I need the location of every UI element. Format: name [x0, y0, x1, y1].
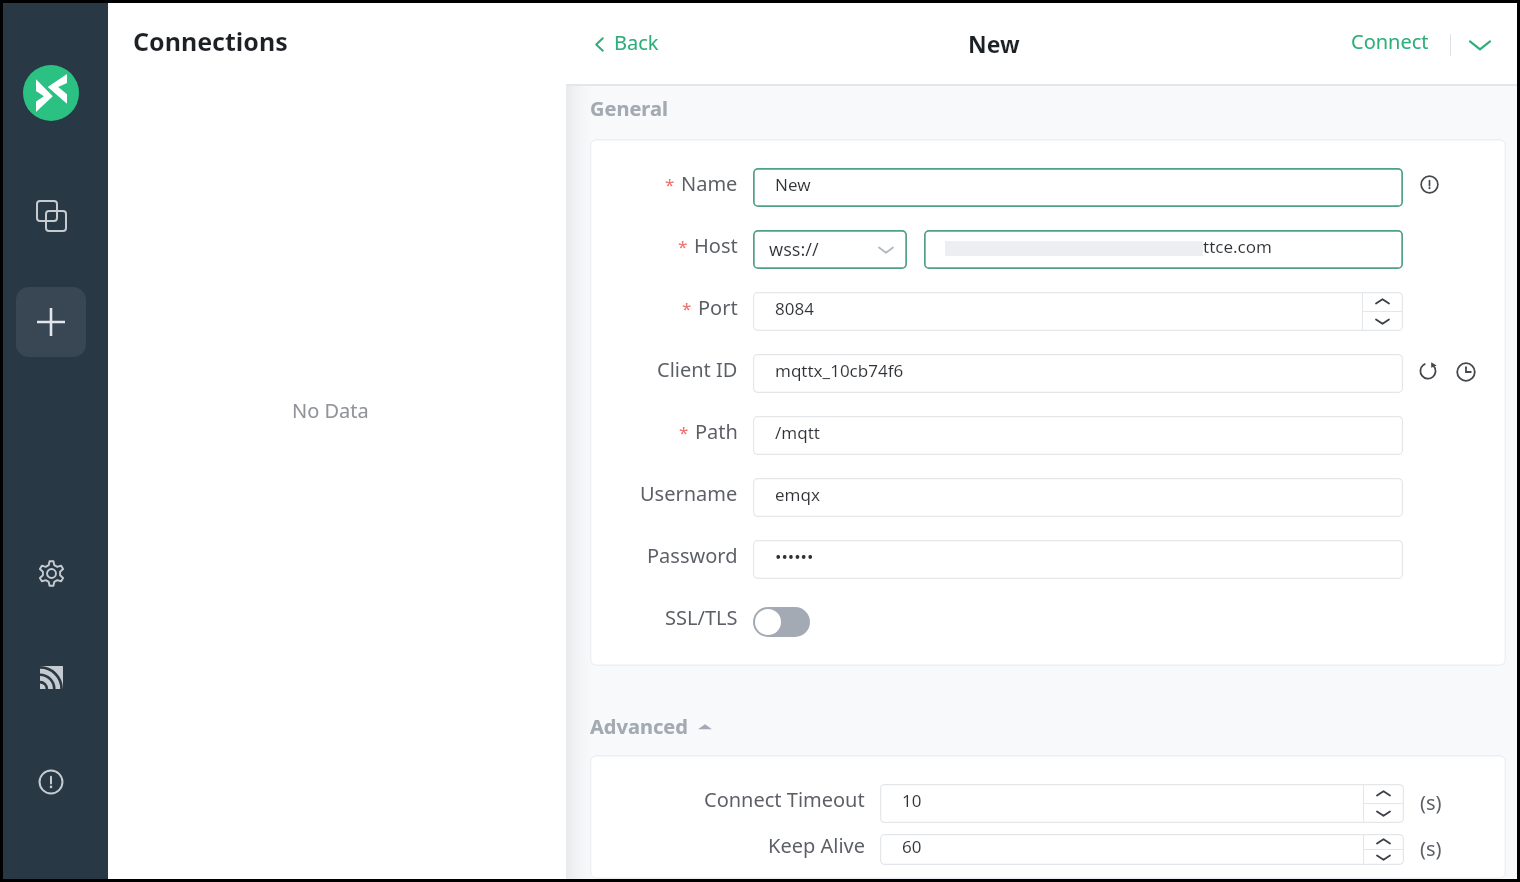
staticText: Keep Alive: [768, 832, 865, 859]
button[interactable]: Increase: [1362, 292, 1403, 311]
button[interactable]: ••••••: [753, 540, 1403, 579]
staticText: Host: [694, 232, 738, 259]
button[interactable]: Back: [592, 31, 659, 58]
button[interactable]: More connect options: [1465, 30, 1495, 60]
button[interactable]: 8084: [753, 292, 1403, 331]
button[interactable]: Name info: [1417, 172, 1441, 196]
staticText: Password: [647, 542, 738, 569]
staticText: New: [775, 173, 811, 196]
button[interactable]: 10: [880, 784, 1404, 823]
button[interactable]: Increase: [1363, 834, 1404, 849]
staticText: ttce.com: [1203, 235, 1272, 258]
button[interactable]: mqttx_10cb74f6: [753, 354, 1403, 393]
button[interactable]: wss://: [753, 230, 907, 269]
staticText: Port: [698, 294, 738, 321]
button[interactable]: General: [590, 95, 668, 122]
staticText: 8084: [775, 297, 814, 320]
staticText: (s): [1420, 789, 1442, 816]
button[interactable]: /mqtt: [753, 416, 1403, 455]
button[interactable]: Advanced: [590, 713, 712, 740]
staticText: Connections: [133, 24, 288, 58]
staticText: Name: [681, 170, 738, 197]
button[interactable]: Client ID history: [1453, 359, 1479, 385]
staticText: /mqtt: [775, 421, 820, 444]
staticText: (s): [1420, 835, 1442, 862]
staticText: mqttx_10cb74f6: [775, 359, 904, 382]
staticText: New: [968, 28, 1020, 59]
button[interactable]: Decrease: [1362, 312, 1403, 331]
button[interactable]: Regenerate client ID: [1415, 358, 1441, 384]
staticText: ••••••: [775, 545, 814, 568]
staticText: *: [678, 235, 688, 258]
button[interactable]: MQTTX: [23, 65, 79, 121]
staticText: Back: [614, 29, 659, 56]
button[interactable]: About: [24, 755, 78, 809]
staticText: Path: [695, 418, 738, 445]
staticText: 60: [902, 835, 922, 858]
button[interactable]: Decrease: [1363, 804, 1404, 823]
button[interactable]: Settings: [24, 546, 78, 600]
staticText: emqx: [775, 483, 820, 506]
button[interactable]: 60: [880, 834, 1404, 865]
button[interactable]: New: [753, 168, 1403, 207]
staticText: wss://: [769, 237, 819, 262]
button[interactable]: Connections: [24, 189, 78, 243]
button[interactable]: Decrease: [1363, 850, 1404, 865]
staticText: Connect: [1351, 28, 1429, 55]
staticText: *: [665, 173, 675, 196]
button[interactable]: Connect: [1351, 31, 1429, 58]
staticText: *: [682, 297, 692, 320]
staticText: Connect Timeout: [704, 786, 865, 813]
button[interactable]: New connection: [16, 287, 86, 357]
staticText: No Data: [292, 397, 369, 424]
button[interactable]: ttce.com: [924, 230, 1403, 269]
staticText: General: [590, 95, 668, 122]
button[interactable]: Enable SSL/TLS: [753, 607, 810, 637]
staticText: SSL/TLS: [665, 604, 738, 631]
staticText: *: [679, 421, 689, 444]
staticText: Advanced: [590, 713, 688, 740]
staticText: Client ID: [657, 356, 738, 383]
staticText: Username: [640, 480, 738, 507]
button[interactable]: emqx: [753, 478, 1403, 517]
staticText: 10: [902, 789, 922, 812]
button[interactable]: Logs: [24, 650, 78, 704]
button[interactable]: Increase: [1363, 784, 1404, 803]
